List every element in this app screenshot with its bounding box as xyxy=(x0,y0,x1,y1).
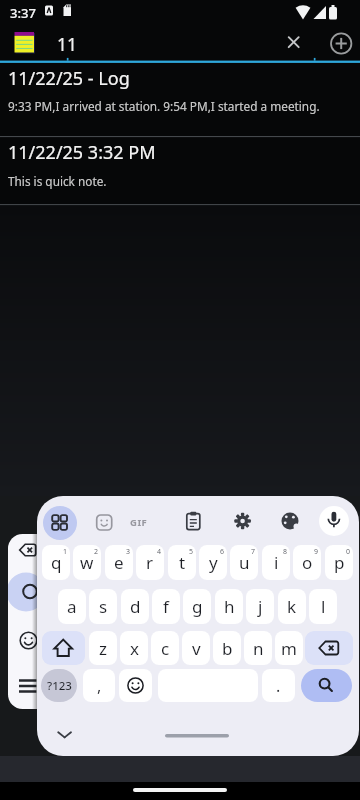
staticText: n xyxy=(253,637,264,660)
staticText: . xyxy=(276,675,281,697)
staticText: p xyxy=(334,551,345,574)
button[interactable] xyxy=(8,534,37,709)
staticText: This is quick note. xyxy=(8,173,107,189)
button[interactable]: f xyxy=(152,589,180,624)
staticText: z xyxy=(99,637,107,660)
staticText: h xyxy=(224,595,235,618)
button[interactable]: p xyxy=(325,545,353,580)
button[interactable] xyxy=(301,669,352,702)
button[interactable]: v xyxy=(182,631,210,665)
staticText: c xyxy=(161,637,170,660)
staticText: a xyxy=(67,595,77,618)
button[interactable]: o xyxy=(293,545,321,580)
staticText: 8 xyxy=(283,547,288,557)
staticText: 5 xyxy=(189,547,194,557)
button[interactable] xyxy=(42,631,85,665)
button[interactable]: i xyxy=(262,545,290,580)
staticText: i xyxy=(274,551,279,574)
button[interactable]: r xyxy=(136,545,164,580)
button[interactable]: a xyxy=(58,589,86,624)
button[interactable]: z xyxy=(89,631,117,665)
button[interactable] xyxy=(305,631,353,665)
button[interactable]: 11/22/25 - Log xyxy=(0,63,360,136)
button[interactable]: c xyxy=(151,631,179,665)
button[interactable] xyxy=(119,669,152,702)
staticText: x xyxy=(130,637,139,660)
button[interactable] xyxy=(277,28,311,62)
button[interactable]: x xyxy=(120,631,148,665)
staticText: 11/22/25 3:32 PM xyxy=(8,140,156,165)
staticText: 3 xyxy=(126,547,131,557)
staticText: 7 xyxy=(251,547,256,557)
staticText: 11/22/25 - Log xyxy=(8,66,130,91)
staticText: 6 xyxy=(220,547,225,557)
staticText: d xyxy=(130,595,141,618)
staticText: GIF xyxy=(130,516,148,529)
staticText: u xyxy=(239,551,250,574)
staticText: l xyxy=(321,595,326,618)
staticText: b xyxy=(222,637,233,660)
button[interactable]: h xyxy=(215,589,243,624)
staticText: v xyxy=(192,637,201,660)
staticText: 9 xyxy=(314,547,319,557)
staticText: o xyxy=(302,551,313,574)
staticText: f xyxy=(163,595,169,618)
button[interactable]: g xyxy=(183,589,211,624)
button[interactable]: e xyxy=(105,545,133,580)
button[interactable]: , xyxy=(83,669,115,702)
staticText: q xyxy=(51,551,62,574)
staticText: g xyxy=(192,595,203,618)
staticText: s xyxy=(99,595,108,618)
staticText: ?123 xyxy=(47,678,72,694)
button[interactable]: u xyxy=(230,545,258,580)
button[interactable]: s xyxy=(89,589,117,624)
staticText: 3:37 xyxy=(10,4,36,22)
staticText: w xyxy=(80,551,94,574)
staticText: r xyxy=(146,551,154,574)
button[interactable]: n xyxy=(244,631,272,665)
button[interactable]: b xyxy=(213,631,241,665)
staticText: t xyxy=(179,551,186,574)
button[interactable]: l xyxy=(309,589,337,624)
staticText: e xyxy=(114,551,124,574)
button[interactable]: t xyxy=(168,545,196,580)
staticText: 11 xyxy=(57,32,78,56)
button[interactable]: d xyxy=(121,589,149,624)
button[interactable]: . xyxy=(262,669,295,702)
button[interactable]: j xyxy=(246,589,274,624)
staticText: 9:33 PM,I arrived at station. 9:54 PM,I … xyxy=(8,98,320,114)
staticText: y xyxy=(209,551,218,574)
button[interactable]: k xyxy=(278,589,306,624)
button[interactable] xyxy=(325,28,357,60)
staticText: j xyxy=(258,595,263,618)
staticText: 0 xyxy=(346,547,351,557)
button[interactable]: ?123 xyxy=(41,669,77,702)
staticText: m xyxy=(281,637,297,660)
button[interactable]: y xyxy=(199,545,227,580)
staticText: 4 xyxy=(157,547,162,557)
staticText: 1 xyxy=(63,547,68,557)
button[interactable]: 11/22/25 3:32 PM xyxy=(0,137,360,204)
staticText: , xyxy=(97,675,102,697)
button[interactable]: m xyxy=(275,631,303,665)
button[interactable]: w xyxy=(73,545,101,580)
staticText: k xyxy=(287,595,297,618)
button[interactable] xyxy=(319,506,349,536)
button[interactable] xyxy=(43,506,77,540)
button[interactable]: q xyxy=(42,545,70,580)
staticText: 2 xyxy=(94,547,99,557)
